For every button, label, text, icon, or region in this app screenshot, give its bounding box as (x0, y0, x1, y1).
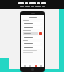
button[interactable] (23, 42, 42, 45)
button[interactable] (23, 26, 42, 29)
button[interactable] (23, 22, 42, 25)
button[interactable]: Delete (23, 32, 42, 35)
button[interactable]: Home (31, 68, 34, 71)
button[interactable]: Tab (34, 64, 37, 67)
button[interactable]: Delete (39, 32, 42, 35)
button[interactable]: Phone preview (20, 11, 45, 72)
button[interactable]: Tab (28, 64, 31, 67)
button[interactable] (21, 15, 44, 19)
button[interactable] (23, 36, 42, 39)
button[interactable] (23, 46, 42, 49)
button[interactable]: Tab (39, 64, 42, 67)
button[interactable]: Tab (23, 64, 26, 67)
button[interactable] (0, 0, 64, 9)
